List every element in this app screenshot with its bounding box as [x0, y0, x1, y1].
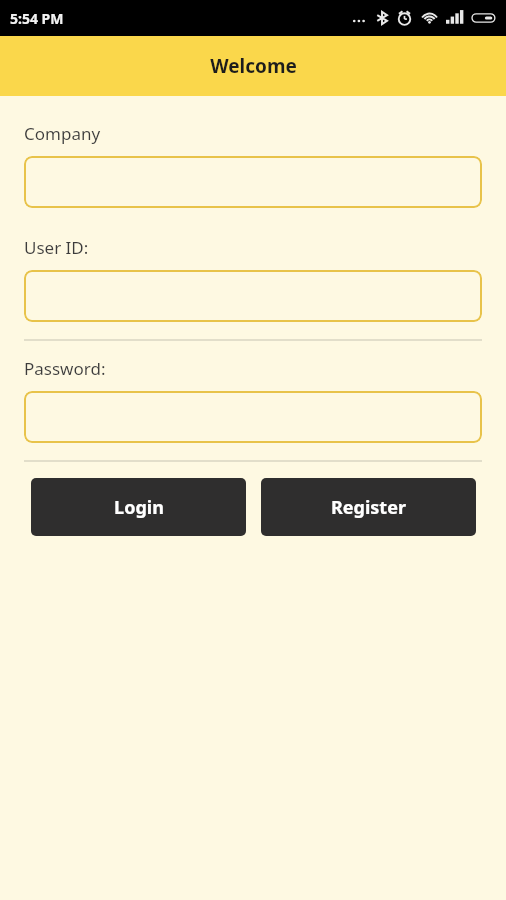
- staticText: 5:54 PM: [10, 9, 64, 28]
- staticText: User ID:: [24, 236, 89, 259]
- staticText: Welcome: [210, 53, 297, 79]
- staticText: Login: [114, 495, 164, 520]
- button[interactable]: Login: [31, 478, 246, 536]
- staticText: Password:: [24, 357, 106, 380]
- button[interactable]: [24, 270, 482, 322]
- staticText: Company: [24, 122, 101, 145]
- button[interactable]: [24, 156, 482, 208]
- staticText: Register: [331, 495, 406, 520]
- button[interactable]: [24, 391, 482, 443]
- button[interactable]: Register: [261, 478, 476, 536]
